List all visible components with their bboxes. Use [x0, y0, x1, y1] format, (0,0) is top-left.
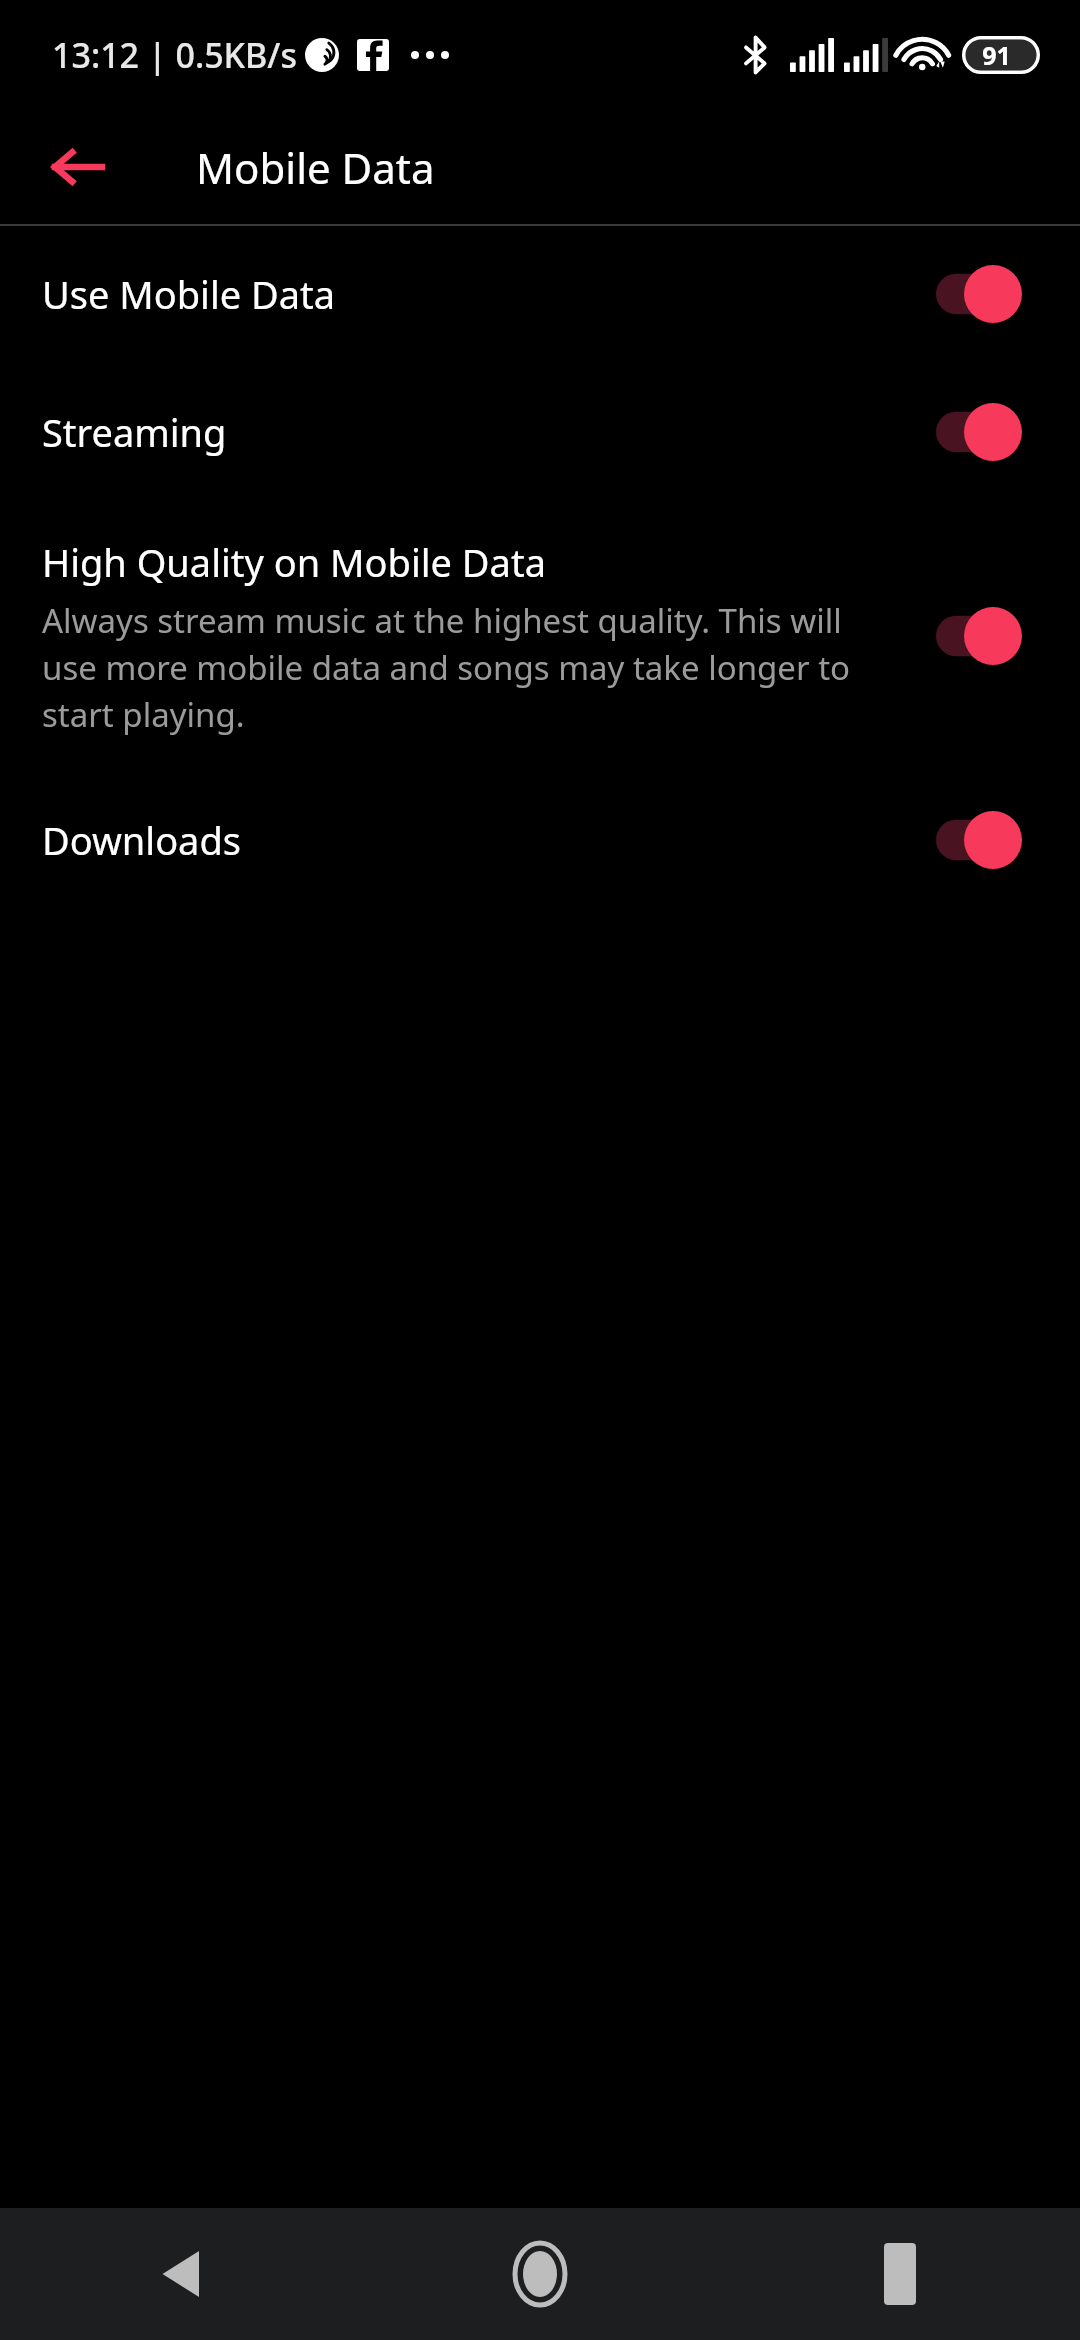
staticText: High Quality on Mobile Data	[42, 536, 546, 588]
button[interactable]: Toggle	[936, 607, 1022, 665]
button[interactable]: Toggle	[936, 811, 1022, 869]
button[interactable]: Recent apps	[720, 2208, 1080, 2340]
button[interactable]: Back	[0, 2208, 360, 2340]
staticText: Streaming	[42, 406, 227, 458]
button[interactable]: Home	[360, 2208, 720, 2340]
button[interactable]: Downloads	[0, 770, 1080, 910]
button[interactable]: Use Mobile Data	[0, 226, 1080, 362]
staticText: Always stream music at the highest quali…	[42, 598, 884, 737]
staticText: Mobile Data	[196, 139, 435, 196]
staticText: 91	[982, 38, 1011, 72]
button[interactable]: Back	[36, 125, 120, 209]
button[interactable]: High Quality on Mobile Data	[0, 502, 1080, 770]
button[interactable]: Toggle	[936, 265, 1022, 323]
staticText: Use Mobile Data	[42, 268, 336, 320]
button[interactable]: Streaming	[0, 362, 1080, 502]
staticText: 13:12 | 0.5KB/s	[52, 32, 297, 78]
staticText: Downloads	[42, 814, 242, 866]
button[interactable]: Toggle	[936, 403, 1022, 461]
